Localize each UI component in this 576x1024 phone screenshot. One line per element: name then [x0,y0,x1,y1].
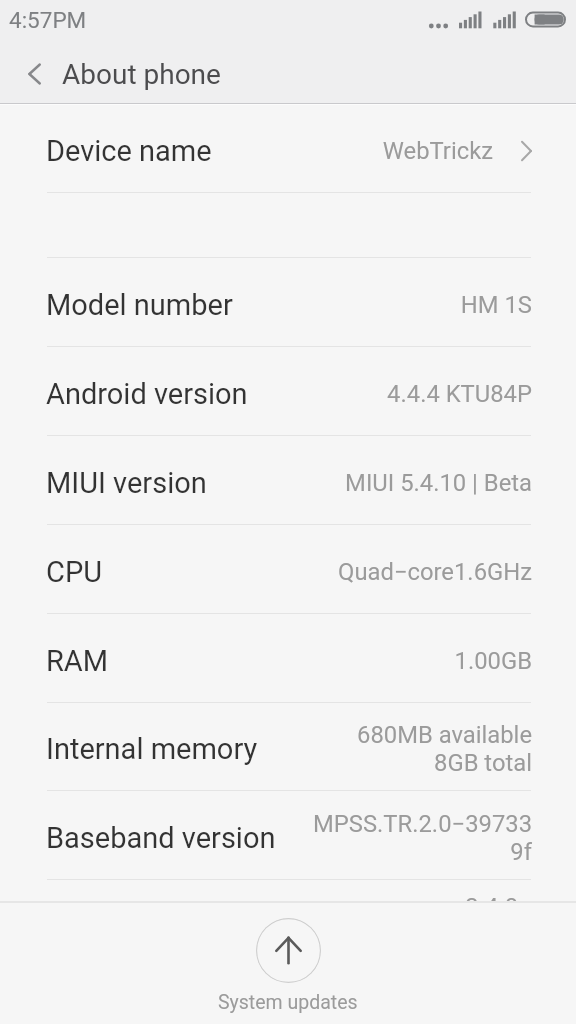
button[interactable]: MIUI version [0,436,576,525]
button[interactable]: Model number [0,258,576,347]
staticText: 680MB available [357,721,532,749]
staticText: WebTrickz [382,137,493,165]
button[interactable]: Baseband version [0,791,576,880]
staticText: MIUI 5.4.10 | Beta [345,469,532,497]
staticText: About phone [62,58,221,91]
button[interactable]: System updates [0,901,576,1024]
staticText: Model number [46,288,233,322]
button[interactable]: CPU [0,525,576,614]
staticText: MPSS.TR.2.0−39733 [313,810,532,838]
button[interactable]: Android version [0,347,576,436]
button[interactable]: Device name [0,104,576,193]
staticText: Android version [46,377,248,411]
button[interactable]: Kernel version [0,880,576,901]
button[interactable]: Back [0,44,62,104]
button[interactable]: RAM [0,614,576,703]
staticText: 3.4.0 [465,893,518,901]
staticText: 4:57PM [9,7,87,33]
staticText: System updates [218,991,358,1014]
staticText: 9f [510,838,532,866]
staticText: MIUI version [46,466,207,500]
staticText: Internal memory [46,732,258,766]
staticText: RAM [46,644,109,678]
staticText: CPU [46,555,102,589]
staticText: Device name [46,134,212,168]
staticText: HM 1S [460,291,532,319]
staticText: 4.4.4 KTU84P [387,380,532,408]
staticText: Quad−core1.6GHz [338,558,532,586]
staticText: Baseband version [46,821,276,855]
staticText: 1.00GB [454,647,532,675]
staticText: 8GB total [434,749,532,777]
button[interactable]: Internal memory [0,703,576,791]
